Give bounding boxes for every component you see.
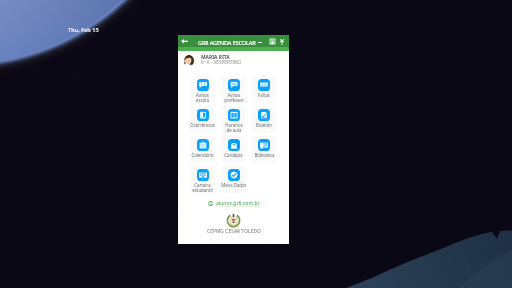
button[interactable]: Calendário [190,136,215,163]
button[interactable]: Avisos escola [190,76,215,103]
button[interactable]: Horários de aula [221,106,246,133]
staticText: alunos.gr8.com.br [216,200,260,207]
staticText: 6ª A - VESPERTINO [201,59,242,65]
staticText: Boletim [256,122,272,128]
button[interactable]: Save [270,39,275,44]
staticText: Faltas [258,92,270,98]
button[interactable]: Avisos professor [221,76,246,103]
staticText: MARIA RITA [201,54,230,61]
button[interactable]: Back [181,39,188,44]
staticText: Horários de aula [225,122,243,133]
staticText: Calendário [191,152,214,158]
staticText: Carteira estudantil [192,182,213,193]
button[interactable]: Boletim [252,106,276,133]
staticText: Avisos escola [196,92,209,103]
staticText: CEPMG CESAR TOLEDO [207,228,261,235]
staticText: Ocorrências [190,122,215,128]
button[interactable]: alunos.gr8.com.br [178,200,289,207]
button[interactable]: Ocorrências [190,106,215,133]
button[interactable]: Pin [280,39,284,45]
button[interactable]: Meus Dados [221,166,246,193]
button[interactable]: Profile photo [183,54,195,66]
staticText: Meus Dados [221,182,246,188]
staticText: GR8 AGENDA ESCOLAR [198,39,256,47]
staticText: Biblioteca [254,152,275,158]
button[interactable]: Biblioteca [252,136,276,163]
staticText: Thu, Feb 15 [68,26,99,34]
button[interactable]: Carteira estudantil [190,166,215,193]
button[interactable]: Faltas [252,76,276,103]
staticText: Avisos professor [224,92,244,103]
staticText: Cardápio [224,152,243,158]
button[interactable]: Cardápio [221,136,246,163]
